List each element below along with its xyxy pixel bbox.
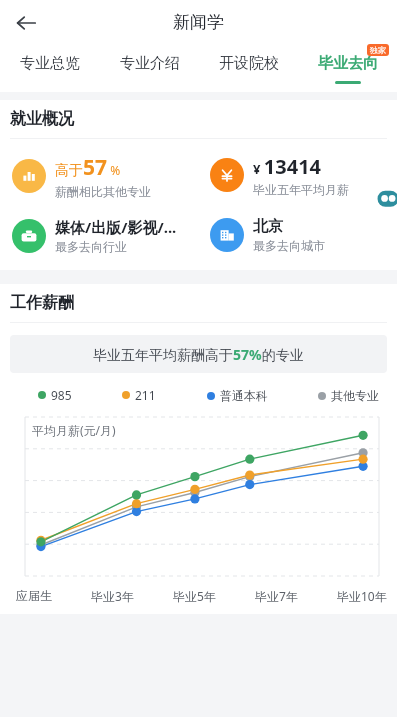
button[interactable]: 专业介绍	[100, 45, 199, 92]
staticText: 毕业7年	[255, 588, 298, 604]
staticText: 211	[135, 387, 156, 403]
staticText: 其他专业	[331, 388, 379, 403]
button[interactable]: 开设院校	[199, 45, 298, 92]
staticText: 普通本科	[220, 388, 268, 403]
staticText: 毕业10年	[337, 588, 387, 604]
staticText: 应届生	[16, 588, 52, 603]
staticText: 毕业五年平均薪酬高于57%的专业	[93, 345, 304, 364]
staticText: 毕业3年	[91, 588, 134, 604]
staticText: ¥ 13414	[253, 153, 322, 180]
staticText: 平均月薪(元/月)	[32, 422, 116, 438]
staticText: 毕业5年	[173, 588, 216, 604]
button[interactable]: Back	[6, 3, 46, 43]
staticText: 985	[51, 387, 72, 403]
staticText: 薪酬相比其他专业	[55, 184, 151, 199]
staticText: 就业概况	[10, 109, 74, 129]
staticText: 最多去向行业	[55, 239, 127, 254]
staticText: 最多去向城市	[253, 238, 325, 253]
button[interactable]: 专业总览	[0, 45, 100, 92]
button[interactable]: 毕业去向	[298, 45, 397, 92]
staticText: 工作薪酬	[10, 293, 74, 313]
button[interactable]: 媒体/出版/影视/...	[0, 217, 198, 254]
staticText: 北京	[253, 217, 283, 236]
button[interactable]: 高于57 %	[0, 153, 198, 199]
staticText: 独家	[370, 45, 386, 55]
staticText: 新闻学	[173, 12, 224, 33]
staticText: 专业介绍	[120, 54, 180, 73]
staticText: 媒体/出版/影视/...	[55, 217, 177, 237]
button[interactable]: 北京	[198, 217, 397, 253]
staticText: 高于57 %	[55, 153, 121, 182]
button[interactable]: ¥ 13414	[198, 153, 397, 197]
staticText: 毕业去向	[318, 54, 378, 73]
staticText: 专业总览	[20, 54, 80, 73]
staticText: 毕业五年平均月薪	[253, 182, 349, 197]
staticText: 开设院校	[219, 54, 279, 73]
button[interactable]: AI assistant	[367, 177, 397, 221]
